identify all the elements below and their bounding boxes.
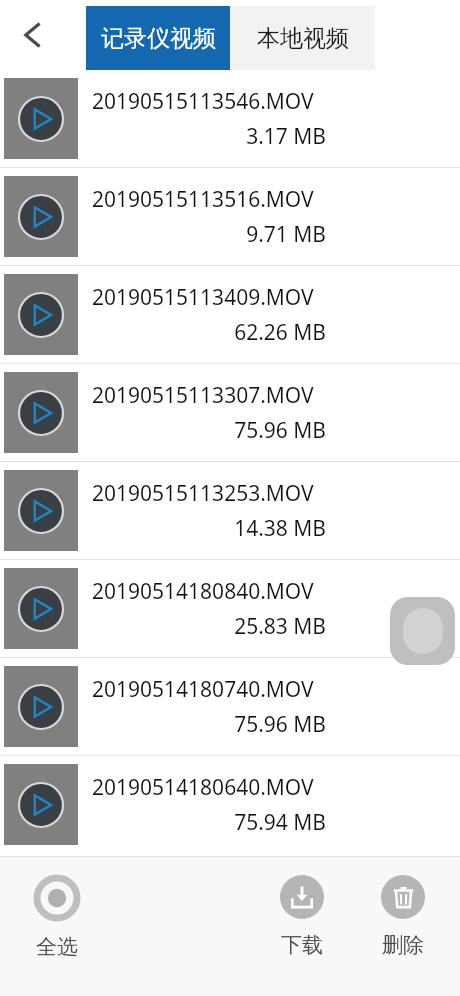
staticText: 20190515113307.MOV	[92, 381, 314, 410]
button[interactable]: 20190514180840.MOV	[0, 560, 460, 657]
button[interactable]: 20190515113516.MOV	[0, 168, 460, 265]
staticText: 75.96 MB	[92, 416, 326, 445]
staticText: 本地视频	[257, 24, 349, 53]
staticText: 62.26 MB	[92, 318, 326, 347]
button[interactable]: Assistive button	[390, 597, 455, 665]
staticText: 14.38 MB	[92, 514, 326, 543]
staticText: 20190514180640.MOV	[92, 773, 314, 802]
button[interactable]: 20190514180640.MOV	[0, 756, 460, 853]
button[interactable]: 删除	[363, 875, 443, 958]
staticText: 20190514180740.MOV	[92, 675, 314, 704]
button[interactable]: 全选	[17, 875, 97, 960]
staticText: 20190515113516.MOV	[92, 185, 314, 214]
button[interactable]: 本地视频	[230, 6, 375, 70]
staticText: 20190514180840.MOV	[92, 577, 314, 606]
staticText: 75.94 MB	[92, 808, 326, 837]
staticText: 删除	[382, 932, 424, 958]
staticText: 20190515113409.MOV	[92, 283, 314, 312]
staticText: 20190515113546.MOV	[92, 87, 314, 116]
button[interactable]: 20190514180740.MOV	[0, 658, 460, 755]
staticText: 20190515113253.MOV	[92, 479, 314, 508]
button[interactable]: 记录仪视频	[86, 6, 230, 70]
staticText: 下载	[281, 932, 323, 958]
staticText: 全选	[36, 934, 78, 960]
button[interactable]: 20190515113307.MOV	[0, 364, 460, 461]
button[interactable]: 20190515113546.MOV	[0, 70, 460, 167]
staticText: 9.71 MB	[92, 220, 326, 249]
staticText: 25.83 MB	[92, 612, 326, 641]
staticText: 3.17 MB	[92, 122, 326, 151]
button[interactable]: 20190515113409.MOV	[0, 266, 460, 363]
button[interactable]: Back	[6, 8, 60, 62]
button[interactable]: 20190515113253.MOV	[0, 462, 460, 559]
staticText: 记录仪视频	[101, 24, 216, 53]
button[interactable]: 下载	[262, 875, 342, 958]
staticText: 75.96 MB	[92, 710, 326, 739]
